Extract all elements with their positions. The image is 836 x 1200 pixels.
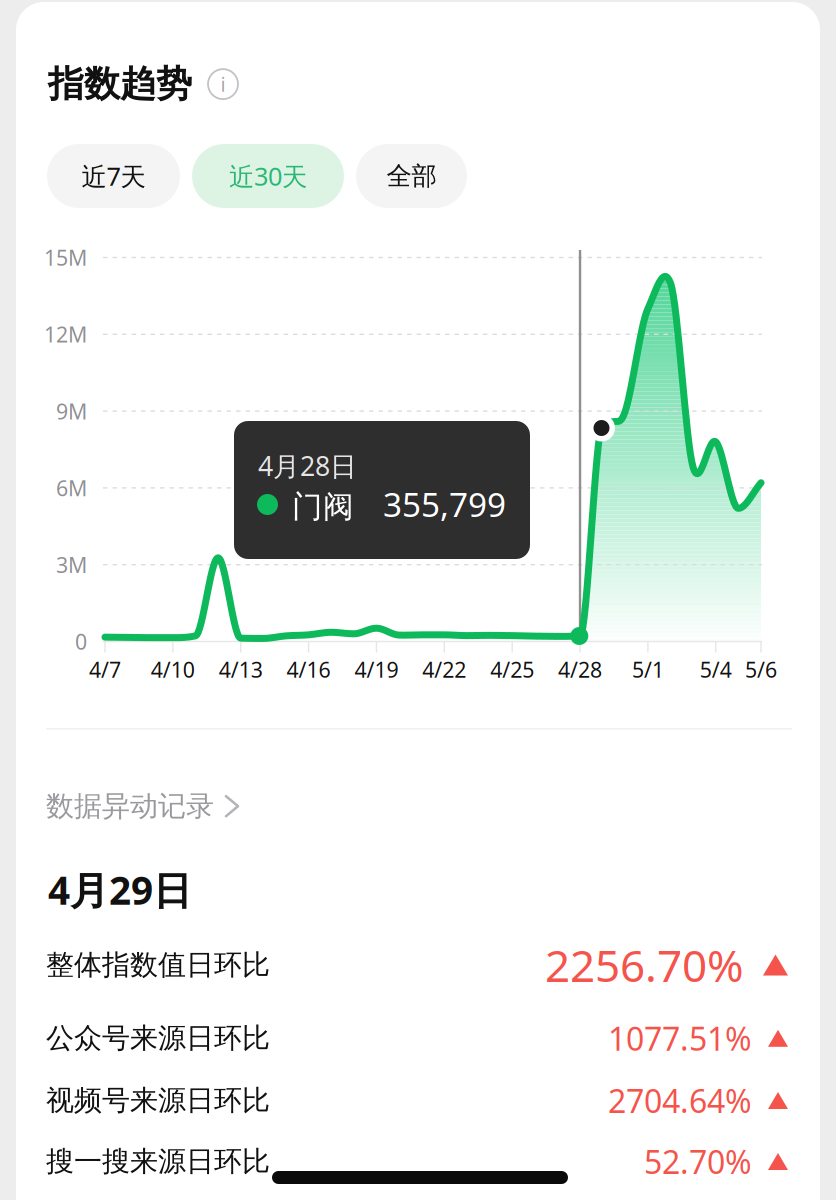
staticText: 全部 [386, 160, 436, 191]
staticText: 5/1 [632, 655, 664, 684]
staticText: 6M [56, 474, 87, 502]
button[interactable]: 全部 [356, 144, 467, 208]
staticText: 3M [56, 550, 87, 579]
button[interactable]: 近30天 [192, 144, 344, 208]
staticText: 15M [44, 243, 87, 272]
staticText: 指数趋势 [48, 62, 192, 106]
staticText: 9M [56, 397, 87, 425]
staticText: 4/13 [219, 655, 263, 684]
staticText: 4/16 [287, 655, 331, 684]
button[interactable]: Info [208, 69, 238, 99]
staticText: 视频号来源日环比 [46, 1083, 270, 1118]
staticText: 搜一搜来源日环比 [46, 1144, 270, 1179]
staticText: 2704.64% [608, 1079, 752, 1122]
staticText: 4月29日 [48, 864, 192, 915]
staticText: 4/7 [89, 655, 121, 684]
staticText: 0 [75, 627, 87, 656]
staticText: 4月28日 [258, 448, 357, 483]
button[interactable]: 数据异动记录 [46, 783, 239, 829]
staticText: 近7天 [81, 159, 145, 193]
staticText: 近30天 [229, 159, 307, 193]
staticText: i [220, 71, 225, 97]
staticText: 2256.70% [545, 936, 744, 994]
staticText: 4/22 [422, 655, 466, 684]
staticText: 整体指数值日环比 [46, 948, 270, 982]
staticText: 门阀 [292, 488, 354, 526]
staticText: 355,799 [383, 482, 506, 526]
staticText: 4/28 [558, 655, 602, 684]
staticText: 12M [44, 320, 87, 348]
button[interactable]: 近7天 [47, 144, 180, 208]
staticText: 4/10 [151, 655, 195, 684]
staticText: 5/4 [700, 655, 732, 684]
staticText: 4/19 [354, 655, 398, 684]
staticText: 公众号来源日环比 [46, 1021, 270, 1055]
staticText: 4/25 [490, 655, 534, 684]
staticText: 52.70% [644, 1140, 752, 1183]
staticText: 1077.51% [608, 1017, 752, 1060]
staticText: 5/6 [745, 655, 777, 684]
staticText: 数据异动记录 [46, 789, 214, 823]
